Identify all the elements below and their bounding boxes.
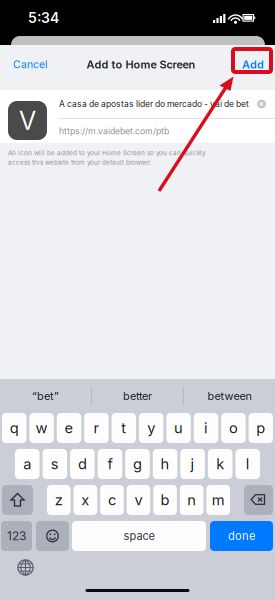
- staticText: i: [204, 419, 208, 437]
- staticText: z: [55, 491, 63, 509]
- button[interactable]: k: [208, 449, 232, 479]
- staticText: A casa de apostas líder do mercado - vai…: [59, 99, 249, 109]
- staticText: k: [216, 455, 224, 473]
- button[interactable]: s: [43, 449, 67, 479]
- button[interactable]: d: [70, 449, 95, 479]
- staticText: 123: [7, 529, 26, 543]
- button[interactable]: l: [235, 449, 260, 479]
- staticText: s: [51, 455, 59, 473]
- button[interactable]: m: [206, 485, 230, 515]
- button[interactable]: 123: [1, 521, 32, 551]
- button[interactable]: Shift: [2, 485, 33, 515]
- staticText: V: [19, 105, 36, 136]
- staticText: e: [64, 419, 73, 437]
- staticText: j: [191, 455, 195, 473]
- button[interactable]: x: [74, 485, 97, 515]
- staticText: u: [174, 419, 183, 437]
- staticText: Add to Home Screen: [86, 58, 195, 71]
- button[interactable]: z: [47, 485, 71, 515]
- staticText: between: [207, 389, 251, 403]
- button[interactable]: Next keyboard: [9, 551, 42, 584]
- staticText: y: [147, 419, 155, 437]
- staticText: c: [108, 491, 116, 509]
- staticText: Add: [242, 58, 264, 71]
- staticText: d: [78, 455, 87, 473]
- button[interactable]: space: [72, 521, 206, 551]
- button[interactable]: e: [57, 413, 81, 443]
- button[interactable]: i: [194, 413, 218, 443]
- staticText: n: [187, 491, 196, 509]
- button[interactable]: v: [127, 485, 150, 515]
- staticText: v: [134, 491, 142, 509]
- button[interactable]: f: [98, 449, 122, 479]
- staticText: space: [123, 529, 154, 543]
- staticText: r: [93, 419, 99, 437]
- button[interactable]: g: [125, 449, 150, 479]
- button[interactable]: j: [180, 449, 205, 479]
- button[interactable]: t: [112, 413, 136, 443]
- staticText: w: [36, 419, 48, 437]
- staticText: p: [256, 419, 265, 437]
- staticText: a: [23, 455, 31, 473]
- staticText: access this website from your default br…: [8, 159, 152, 166]
- staticText: f: [107, 455, 112, 473]
- button[interactable]: o: [221, 413, 246, 443]
- staticText: l: [246, 455, 250, 473]
- button[interactable]: r: [84, 413, 109, 443]
- button[interactable]: a: [15, 449, 40, 479]
- button[interactable]: Clear title: [257, 99, 266, 108]
- staticText: x: [81, 491, 89, 509]
- button[interactable]: y: [139, 413, 163, 443]
- staticText: done: [228, 529, 255, 543]
- staticText: m: [212, 491, 225, 509]
- staticText: h: [161, 455, 170, 473]
- button[interactable]: Cancel: [0, 49, 61, 79]
- button[interactable]: Emoji: [36, 521, 69, 551]
- button[interactable]: done: [210, 521, 273, 551]
- staticText: q: [10, 419, 19, 437]
- staticText: t: [121, 419, 126, 437]
- button[interactable]: Add: [229, 49, 275, 79]
- staticText: 5:34: [28, 9, 59, 26]
- button[interactable]: c: [100, 485, 124, 515]
- button[interactable]: p: [249, 413, 273, 443]
- button[interactable]: u: [166, 413, 191, 443]
- staticText: Cancel: [13, 58, 48, 71]
- staticText: An icon will be added to your Home Scree…: [8, 149, 206, 157]
- button[interactable]: Delete: [244, 485, 273, 515]
- staticText: o: [229, 419, 238, 437]
- staticText: b: [161, 491, 170, 509]
- staticText: https://m.vaidebet.com/ptb: [59, 126, 169, 136]
- button[interactable]: n: [180, 485, 203, 515]
- button[interactable]: b: [153, 485, 177, 515]
- staticText: “bet”: [32, 389, 59, 403]
- button[interactable]: q: [2, 413, 26, 443]
- button[interactable]: h: [153, 449, 177, 479]
- button[interactable]: w: [29, 413, 54, 443]
- staticText: better: [123, 389, 152, 403]
- staticText: g: [133, 455, 142, 473]
